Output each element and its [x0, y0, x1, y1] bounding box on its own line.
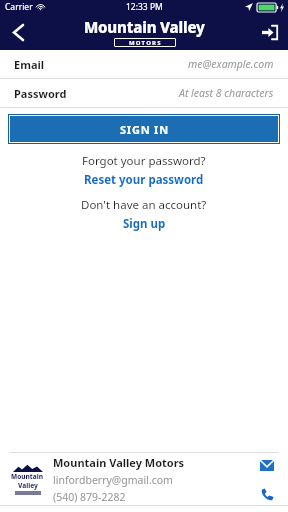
button[interactable]: Email — [256, 454, 278, 476]
button[interactable]: Sign up — [117, 215, 172, 233]
staticText: Valley — [18, 481, 38, 490]
staticText: me@example.com — [188, 57, 274, 71]
staticText: (540) 879-2282 — [53, 490, 126, 504]
staticText: Sign up — [123, 216, 166, 232]
staticText: At least 8 characters — [179, 86, 274, 100]
button[interactable]: Mountain — [0, 453, 288, 505]
staticText: Reset your password — [84, 172, 204, 188]
staticText: 12:33 PM — [126, 1, 163, 13]
button[interactable]: Password — [0, 79, 288, 107]
staticText: Mountain Valley Motors — [53, 455, 185, 470]
staticText: SIGN IN — [120, 122, 169, 137]
staticText: Password — [14, 86, 67, 101]
staticText: Email — [14, 57, 45, 72]
staticText: Don't have an account? — [81, 197, 207, 213]
button[interactable]: SIGN IN — [10, 116, 278, 142]
button[interactable]: Sign in — [252, 14, 288, 50]
button[interactable]: Reset your password — [78, 171, 210, 189]
staticText: Carrier — [5, 1, 33, 13]
button[interactable]: Back — [0, 14, 36, 50]
button[interactable]: Call — [256, 483, 278, 505]
staticText: MOTORS — [129, 39, 162, 47]
button[interactable]: Email — [0, 50, 288, 78]
staticText: linfordberry@gmail.com — [53, 473, 173, 487]
staticText: Mountain Valley — [84, 17, 205, 37]
staticText: Forgot your password? — [82, 153, 206, 169]
staticText: Mountain — [11, 472, 44, 481]
